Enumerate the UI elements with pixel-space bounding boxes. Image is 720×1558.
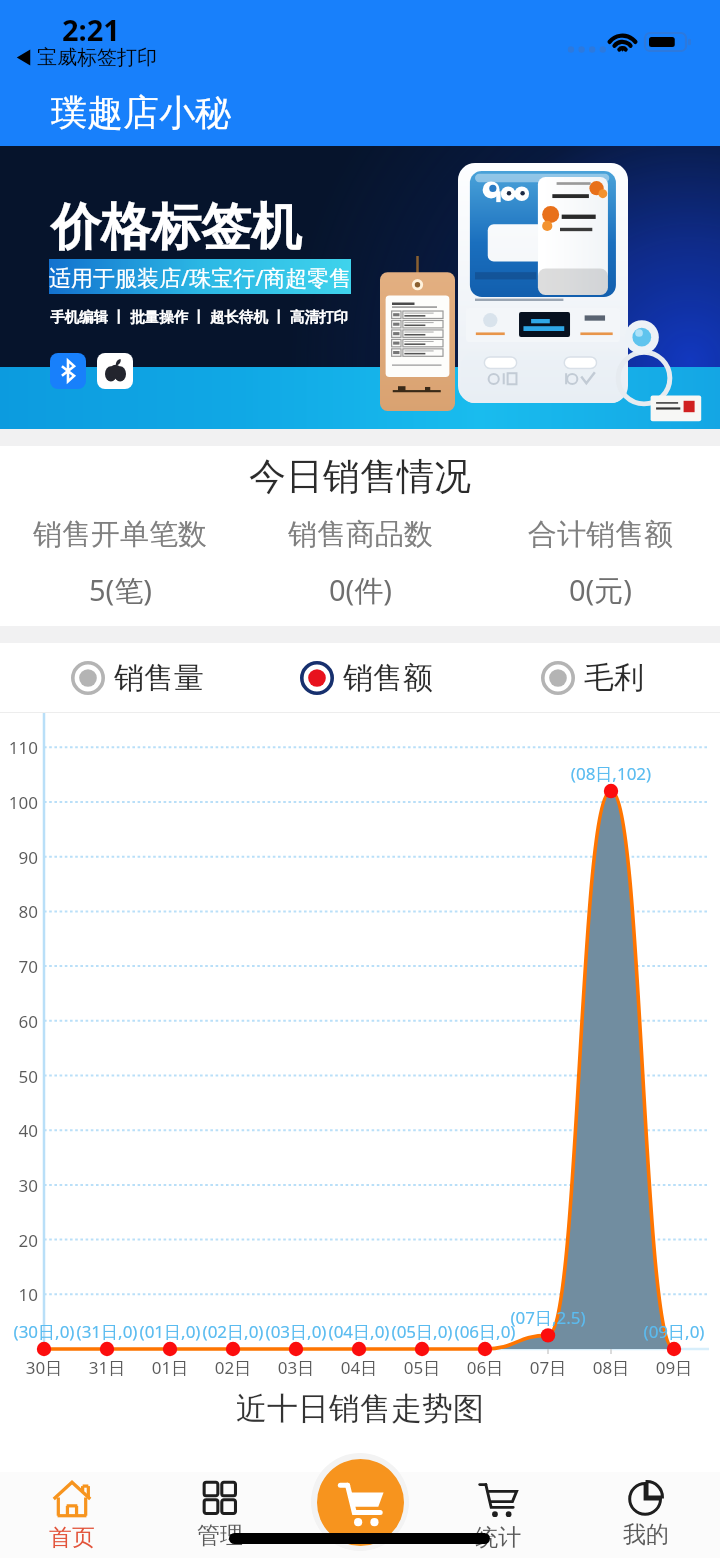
staticText: 璞趣店小秘	[51, 90, 231, 135]
staticText: 08日	[579, 1356, 643, 1379]
staticText: (01日,0)	[110, 1320, 230, 1343]
staticText: 销售开单笔数	[33, 516, 207, 553]
button[interactable]: 首页	[12, 1472, 132, 1558]
staticText: 0(件)	[329, 570, 392, 610]
staticText: 06日	[453, 1356, 517, 1379]
staticText: 手机编辑 丨 批量操作 丨 超长待机 丨 高清打印	[50, 306, 349, 326]
staticText: 40	[0, 1119, 38, 1142]
button[interactable]: 我的	[586, 1472, 706, 1558]
button[interactable]: 销售开单笔数	[0, 516, 240, 610]
staticText: (02日,0)	[173, 1320, 293, 1343]
staticText: (09日,0)	[614, 1320, 720, 1343]
staticText: 统计	[475, 1523, 521, 1552]
staticText: 近十日销售走势图	[0, 1389, 720, 1428]
staticText: 销售量	[114, 659, 204, 697]
button[interactable]: 销售额	[300, 659, 433, 697]
staticText: 销售商品数	[288, 516, 433, 553]
staticText: 10	[0, 1283, 38, 1306]
button[interactable]: 销售商品数	[240, 516, 480, 610]
staticText: (03日,0)	[236, 1320, 356, 1343]
staticText: 04日	[327, 1356, 391, 1379]
staticText: 90	[0, 846, 38, 869]
button[interactable]: 管理	[160, 1472, 280, 1558]
staticText: 110	[0, 736, 38, 759]
staticText: (05日,0)	[362, 1320, 482, 1343]
staticText: 合计销售额	[528, 516, 673, 553]
staticText: (06日,0)	[425, 1320, 545, 1343]
staticText: 31日	[75, 1356, 139, 1379]
staticText: 价格标签机	[51, 196, 301, 259]
staticText: 适用于服装店/珠宝行/商超零售	[49, 262, 351, 292]
staticText: 30日	[12, 1356, 76, 1379]
staticText: 20	[0, 1229, 38, 1252]
staticText: (30日,0)	[0, 1320, 104, 1343]
staticText: 今日销售情况	[0, 453, 720, 500]
staticText: 50	[0, 1065, 38, 1088]
staticText: 09日	[642, 1356, 706, 1379]
staticText: (04日,0)	[299, 1320, 419, 1343]
staticText: (07日,2.5)	[488, 1306, 608, 1329]
staticText: 70	[0, 955, 38, 978]
staticText: 销售额	[343, 659, 433, 697]
staticText: 首页	[49, 1523, 95, 1552]
button[interactable]: 价格标签机	[0, 146, 720, 429]
staticText: 5(笔)	[89, 570, 152, 610]
staticText: 宝威标签打印	[37, 45, 157, 70]
staticText: 100	[0, 791, 38, 814]
button[interactable]: 新建销售单	[317, 1459, 404, 1546]
staticText: 07日	[516, 1356, 580, 1379]
staticText: 0(元)	[569, 570, 632, 610]
staticText: (31日,0)	[47, 1320, 167, 1343]
button[interactable]: 毛利	[541, 659, 644, 697]
staticText: 05日	[390, 1356, 454, 1379]
button[interactable]: 合计销售额	[480, 516, 720, 610]
button[interactable]: 统计	[438, 1472, 558, 1558]
staticText: 30	[0, 1174, 38, 1197]
staticText: 02日	[201, 1356, 265, 1379]
staticText: 80	[0, 900, 38, 923]
staticText: 管理	[197, 1521, 243, 1550]
staticText: (08日,102)	[551, 762, 671, 785]
staticText: 我的	[623, 1520, 669, 1549]
staticText: 2:21	[62, 10, 120, 49]
staticText: 03日	[264, 1356, 328, 1379]
staticText: 60	[0, 1010, 38, 1033]
staticText: 毛利	[584, 659, 644, 697]
button[interactable]: 销售量	[71, 659, 204, 697]
staticText: 01日	[138, 1356, 202, 1379]
